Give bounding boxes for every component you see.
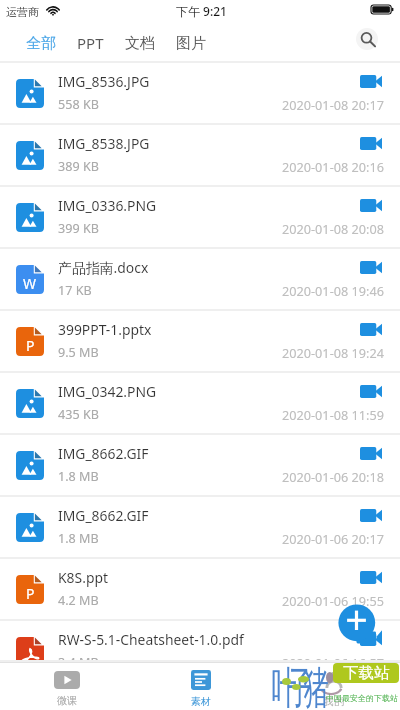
staticText: 1.8 MB (58, 468, 99, 485)
staticText: 微课 (57, 694, 77, 707)
staticText: 2020-01-08 19:46 (282, 282, 384, 299)
staticText: 558 KB (58, 96, 99, 113)
button[interactable]: 素材 (134, 663, 267, 710)
staticText: 2020-01-08 11:59 (282, 406, 384, 423)
staticText: 3.4 MB (58, 654, 99, 662)
button[interactable]: IMG_8538.JPG (0, 125, 400, 187)
staticText: 我的 (324, 695, 344, 708)
button[interactable]: RW-S-5.1-Cheatsheet-1.0.pdf (0, 621, 400, 662)
staticText: 中国最安全的下载站 (326, 693, 398, 703)
staticText: W (23, 274, 37, 293)
button[interactable]: PPT (77, 25, 104, 61)
staticText: 399PPT-1.pptx (58, 320, 152, 339)
staticText: 1.8 MB (58, 530, 99, 547)
button[interactable]: Search (356, 28, 378, 50)
staticText: 素材 (191, 695, 211, 708)
staticText: 2020-01-08 20:16 (282, 158, 384, 175)
staticText: 435 KB (58, 406, 99, 423)
staticText: 2020-01-06 19:55 (282, 592, 384, 609)
staticText: 2020-01-06 20:17 (282, 530, 384, 547)
staticText: 下午 9:21 (176, 3, 227, 19)
staticText: 4.2 MB (58, 592, 99, 609)
staticText: IMG_0336.PNG (58, 196, 157, 215)
staticText: 17 KB (58, 282, 92, 299)
staticText: 下载站 (343, 663, 390, 683)
button[interactable]: IMG_0342.PNG (0, 373, 400, 435)
button[interactable]: 图片 (176, 25, 206, 61)
button[interactable]: 全部 (26, 25, 56, 61)
button[interactable]: P (0, 559, 400, 621)
button[interactable]: IMG_8662.GIF (0, 497, 400, 559)
button[interactable]: IMG_8536.JPG (0, 63, 400, 125)
staticText: P (26, 584, 35, 603)
staticText: 389 KB (58, 158, 99, 175)
staticText: 2020-01-08 19:24 (282, 344, 384, 361)
staticText: RW-S-5.1-Cheatsheet-1.0.pdf (58, 630, 244, 649)
staticText: IMG_8538.JPG (58, 134, 150, 153)
staticText: 9.5 MB (58, 344, 99, 361)
staticText: 文档 (125, 34, 155, 53)
staticText: 运营商 (6, 5, 39, 19)
staticText: 2020-01-06 20:18 (282, 468, 384, 485)
button[interactable]: IMG_0336.PNG (0, 187, 400, 249)
button[interactable]: IMG_8662.GIF (0, 435, 400, 497)
staticText: 全部 (26, 34, 56, 53)
button[interactable]: 我的 (267, 663, 400, 710)
staticText: 产品指南.docx (58, 258, 149, 277)
staticText: IMG_8662.GIF (58, 444, 149, 463)
staticText: IMG_0342.PNG (58, 382, 157, 401)
staticText: 2020-01-08 20:08 (282, 220, 384, 237)
staticText: PPT (77, 33, 104, 53)
staticText: P (26, 336, 35, 355)
button[interactable]: 文档 (125, 25, 155, 61)
staticText: IMG_8536.JPG (58, 72, 150, 91)
button[interactable]: W (0, 249, 400, 311)
button[interactable]: 微课 (0, 663, 134, 710)
staticText: 图片 (176, 34, 206, 53)
staticText: IMG_8662.GIF (58, 506, 149, 525)
staticText: 2020-01-08 20:17 (282, 96, 384, 113)
button[interactable]: P (0, 311, 400, 373)
staticText: 叶子猪 (276, 661, 324, 710)
staticText: 2020-01-06 16:57 (282, 654, 384, 662)
staticText: K8S.ppt (58, 568, 108, 587)
button[interactable]: New recording (335, 599, 385, 645)
staticText: 399 KB (58, 220, 99, 237)
